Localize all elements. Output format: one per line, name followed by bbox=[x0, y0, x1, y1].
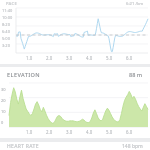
staticText: 3.0 bbox=[66, 55, 73, 61]
staticText: 5.0 bbox=[106, 55, 113, 61]
staticText: 6.0 bbox=[126, 55, 133, 61]
button[interactable]: Heart rate section bbox=[0, 142, 150, 150]
staticText: 6:21 /km bbox=[126, 1, 144, 7]
staticText: 3.0 bbox=[66, 129, 73, 135]
staticText: 1.0 bbox=[26, 55, 33, 61]
staticText: 1.0 bbox=[26, 129, 33, 135]
staticText: 11:40 bbox=[2, 8, 13, 13]
staticText: 0 bbox=[1, 120, 4, 125]
staticText: 3:20 bbox=[2, 43, 10, 48]
staticText: 20 bbox=[1, 98, 6, 103]
staticText: 5:00 bbox=[2, 36, 10, 41]
staticText: 6:40 bbox=[2, 29, 10, 34]
staticText: HEART RATE bbox=[7, 143, 39, 150]
staticText: 148 bpm bbox=[122, 143, 143, 150]
staticText: ELEVATION bbox=[7, 71, 41, 79]
staticText: 4.0 bbox=[86, 55, 93, 61]
staticText: 88 m bbox=[129, 71, 143, 79]
staticText: PACE bbox=[6, 1, 18, 7]
staticText: 10:00 bbox=[2, 15, 13, 20]
staticText: 2.0 bbox=[46, 55, 53, 61]
staticText: 2.0 bbox=[46, 129, 53, 135]
button[interactable]: PACE bbox=[0, 0, 150, 64]
staticText: 30 bbox=[1, 87, 6, 92]
staticText: 4.0 bbox=[86, 129, 93, 135]
staticText: 5.0 bbox=[106, 129, 113, 135]
staticText: 8:20 bbox=[2, 22, 10, 27]
staticText: 10 bbox=[1, 109, 6, 114]
button[interactable]: ELEVATION bbox=[0, 67, 150, 138]
staticText: 6.0 bbox=[126, 129, 133, 135]
